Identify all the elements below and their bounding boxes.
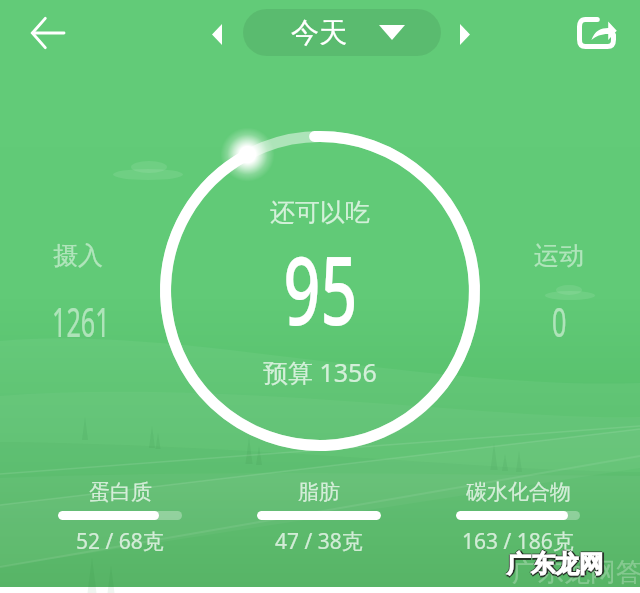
staticText: 163 / 186克	[462, 527, 574, 556]
staticText: 摄入	[53, 240, 103, 271]
staticText: 0	[552, 294, 566, 348]
button[interactable]: Back	[22, 7, 74, 59]
button[interactable]: Calories remaining	[160, 131, 480, 451]
button[interactable]: Previous day	[201, 14, 233, 54]
staticText: 广东龙网	[507, 549, 603, 579]
staticText: 广东龙网	[507, 548, 603, 578]
staticText: 52 / 68克	[76, 527, 164, 556]
button[interactable]: 蛋白质	[58, 479, 182, 556]
staticText: 运动	[534, 240, 584, 271]
staticText: 47 / 38克	[275, 527, 363, 556]
button[interactable]: 今天	[243, 9, 441, 56]
staticText: 脂肪	[298, 479, 340, 505]
staticText: 广东龙网	[509, 549, 605, 579]
staticText: 还可以吃	[270, 197, 370, 228]
staticText: 预算 1356	[263, 355, 377, 389]
staticText: 广东龙网	[506, 549, 602, 579]
staticText: 碳水化合物	[466, 479, 571, 505]
button[interactable]: 碳水化合物	[456, 479, 580, 556]
staticText: 蛋白质	[89, 479, 152, 505]
staticText: 广东龙网	[507, 551, 603, 581]
button[interactable]: Next day	[449, 14, 481, 54]
staticText: 今天	[291, 15, 347, 50]
staticText: 1261	[52, 294, 110, 348]
button[interactable]: Share	[570, 7, 622, 59]
staticText: 广东龙网答	[512, 556, 640, 589]
button[interactable]: 脂肪	[257, 479, 381, 556]
staticText: 95	[283, 223, 357, 352]
